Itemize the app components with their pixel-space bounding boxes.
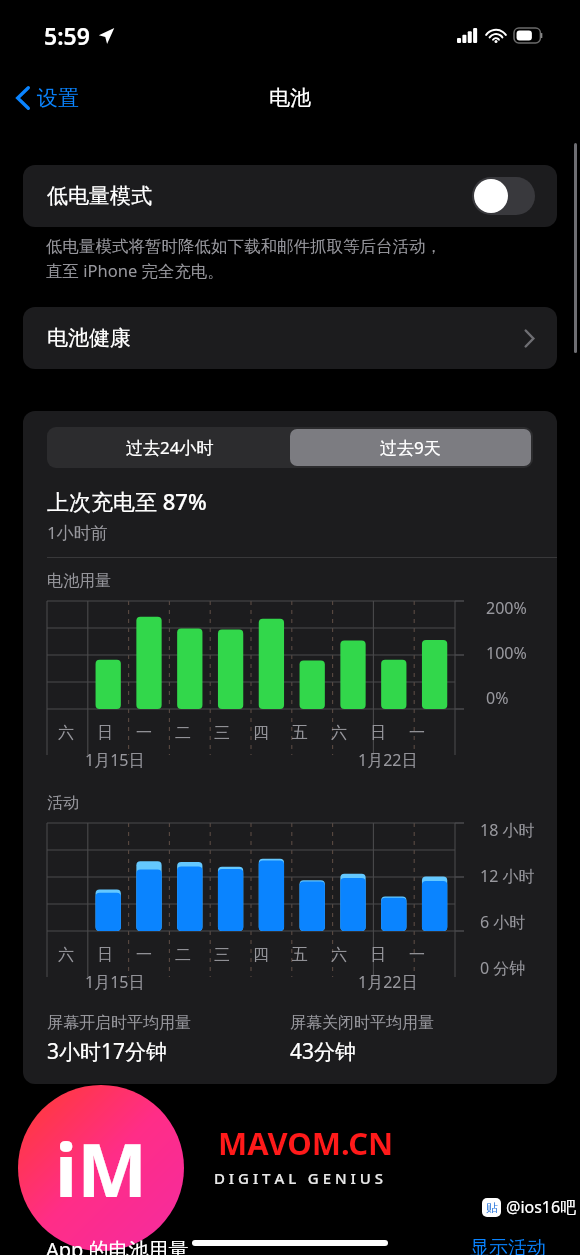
staticText: 0% (486, 687, 509, 709)
staticText: 100% (486, 642, 527, 664)
staticText: 日 (97, 945, 113, 965)
staticText: D I G I T A L G E N I U S (214, 1168, 383, 1188)
other: Low Power Mode toggle (472, 177, 535, 215)
staticText: 六 (58, 945, 74, 965)
staticText: 设置 (37, 85, 79, 111)
staticText: 二 (175, 723, 191, 743)
staticText: MAVOM.CN (218, 1122, 394, 1164)
staticText: 屏幕关闭时平均用量 (290, 1013, 434, 1033)
staticText: 1月22日 (358, 971, 418, 993)
staticText: 一 (409, 723, 425, 743)
staticText: 贴 (486, 1200, 498, 1215)
staticText: 一 (136, 945, 152, 965)
staticText: 四 (253, 723, 269, 743)
button[interactable]: 设置 (10, 81, 85, 115)
staticText: 3小时17分钟 (47, 1037, 168, 1066)
button[interactable]: 过去9天 (290, 429, 531, 466)
button[interactable]: 过去24小时 (49, 429, 290, 466)
staticText: 电池 (269, 85, 311, 111)
staticText: 日 (97, 723, 113, 743)
staticText: 低电量模式 (47, 183, 152, 209)
staticText: 日 (370, 723, 386, 743)
staticText: 低电量模式将暂时降低如下载和邮件抓取等后台活动， 直至 iPhone 完全充电。 (46, 236, 442, 282)
staticText: 1月15日 (85, 971, 145, 993)
staticText: 0 分钟 (480, 957, 526, 979)
staticText: 五 (292, 945, 308, 965)
staticText: 活动 (47, 793, 79, 813)
staticText: 电池健康 (47, 325, 131, 351)
staticText: 18 小时 (480, 819, 535, 841)
button[interactable]: 电池健康 (23, 307, 557, 369)
staticText: 6 小时 (480, 911, 526, 933)
staticText: 六 (58, 723, 74, 743)
staticText: 过去24小时 (126, 436, 214, 459)
staticText: 屏幕开启时平均用量 (47, 1013, 191, 1033)
button[interactable]: 低电量模式 (23, 165, 557, 227)
staticText: 二 (175, 945, 191, 965)
staticText: 过去9天 (380, 436, 441, 459)
staticText: 四 (253, 945, 269, 965)
staticText: 五 (292, 723, 308, 743)
staticText: @ios16吧 (506, 1196, 577, 1218)
staticText: 上次充电至 87% (47, 486, 207, 516)
staticText: 三 (214, 945, 230, 965)
staticText: 1月22日 (358, 749, 418, 771)
staticText: 六 (331, 723, 347, 743)
staticText: 日 (370, 945, 386, 965)
staticText: 六 (331, 945, 347, 965)
staticText: 43分钟 (290, 1037, 357, 1066)
staticText: 200% (486, 597, 527, 619)
staticText: 1月15日 (85, 749, 145, 771)
staticText: iM (55, 1118, 147, 1219)
staticText: App 的电池用量 (46, 1236, 189, 1255)
staticText: 三 (214, 723, 230, 743)
staticText: 一 (409, 945, 425, 965)
staticText: 1小时前 (47, 521, 108, 544)
staticText: 12 小时 (480, 865, 535, 887)
staticText: 显示活动 (470, 1236, 546, 1255)
staticText: 电池用量 (47, 571, 111, 591)
staticText: 一 (136, 723, 152, 743)
staticText: 5:59 (44, 20, 90, 51)
